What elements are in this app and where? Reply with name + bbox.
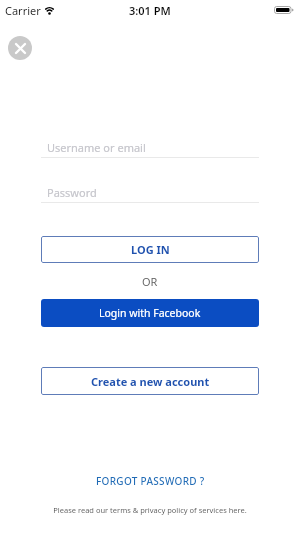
button[interactable]: LOG IN bbox=[41, 236, 259, 263]
button[interactable]: FORGOT PASSWORD ? bbox=[96, 474, 205, 488]
staticText: Password bbox=[47, 185, 97, 200]
staticText: Username or email bbox=[47, 140, 146, 155]
staticText: Carrier bbox=[5, 3, 41, 18]
staticText: 3:01 PM bbox=[129, 3, 171, 18]
button[interactable]: Login with Facebook bbox=[41, 299, 259, 327]
staticText: Please read our terms & privacy policy o… bbox=[53, 505, 247, 515]
button[interactable] bbox=[8, 36, 32, 60]
staticText: Create a new account bbox=[91, 374, 210, 389]
staticText: LOG IN bbox=[131, 242, 170, 257]
staticText: Login with Facebook bbox=[99, 306, 201, 320]
button[interactable]: Create a new account bbox=[41, 367, 259, 395]
staticText: OR bbox=[142, 274, 158, 289]
